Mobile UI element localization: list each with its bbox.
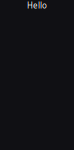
staticText: Hello: [27, 0, 47, 11]
